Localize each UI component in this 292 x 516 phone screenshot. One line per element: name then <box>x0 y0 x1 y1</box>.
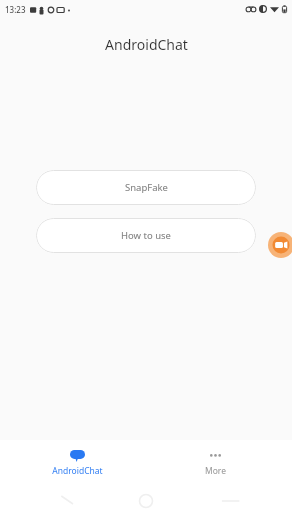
button[interactable]: More <box>155 440 275 486</box>
staticText: AndroidChat <box>52 465 103 477</box>
staticText: AndroidChat <box>105 35 188 54</box>
staticText: 13:23 <box>5 4 26 15</box>
button[interactable]: SnapFake <box>36 170 256 205</box>
button[interactable]: How to use <box>36 218 256 253</box>
staticText: More <box>205 465 226 477</box>
staticText: SnapFake <box>125 181 168 194</box>
button[interactable]: Video <box>271 232 292 258</box>
staticText: How to use <box>121 229 171 242</box>
button[interactable]: AndroidChat <box>17 440 137 486</box>
